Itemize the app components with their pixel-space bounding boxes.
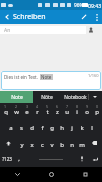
staticText: Notebook <box>64 94 87 101</box>
button[interactable]: ?123 <box>0 151 14 167</box>
button[interactable]: Dies ist ein Text. <box>1 71 101 90</box>
button[interactable]: 8 <box>72 103 82 119</box>
button[interactable]: 9 <box>82 103 92 119</box>
staticText: w <box>14 108 19 116</box>
staticText: 09:43 <box>88 2 102 9</box>
staticText: 7 <box>66 104 69 109</box>
button[interactable]: c <box>37 135 47 151</box>
button[interactable]: More suggestions <box>88 91 102 103</box>
staticText: Note <box>11 94 23 101</box>
staticText: 6 <box>56 104 59 109</box>
button[interactable]: v <box>47 135 57 151</box>
button[interactable]: , <box>14 151 24 167</box>
button[interactable]: Backspace <box>87 135 102 151</box>
staticText: p <box>95 108 99 116</box>
button[interactable]: 7 <box>62 103 72 119</box>
staticText: t <box>46 108 49 116</box>
staticText: i <box>76 108 78 116</box>
staticText: 4 <box>36 104 39 109</box>
button[interactable]: Nöte <box>33 91 61 103</box>
staticText: Schreiben <box>13 12 46 22</box>
staticText: k <box>80 124 84 132</box>
button[interactable]: x <box>27 135 37 151</box>
staticText: ?123 <box>2 156 12 162</box>
staticText: 5 <box>46 104 49 109</box>
button[interactable]: Back <box>0 10 13 24</box>
staticText: Nöte <box>41 94 53 101</box>
button[interactable]: m <box>77 135 87 151</box>
button[interactable]: Note <box>0 91 33 103</box>
button[interactable]: 3 <box>22 103 32 119</box>
staticText: 3 <box>26 104 29 109</box>
staticText: g <box>50 124 54 132</box>
button[interactable]: 6 <box>52 103 62 119</box>
button[interactable]: Recents <box>68 167 102 182</box>
button[interactable]: n <box>67 135 77 151</box>
staticText: e <box>25 108 29 116</box>
button[interactable]: Voice input <box>77 151 87 167</box>
staticText: y <box>20 141 24 149</box>
button[interactable]: f <box>37 119 47 135</box>
button[interactable]: d <box>27 119 37 135</box>
staticText: c <box>41 141 44 149</box>
staticText: l <box>91 124 93 132</box>
staticText: f <box>41 124 44 132</box>
staticText: h <box>60 124 64 132</box>
button[interactable]: 4 <box>32 103 42 119</box>
button[interactable]: An <box>0 26 86 34</box>
button[interactable]: Edit <box>77 10 91 24</box>
button[interactable]: Enter <box>87 151 102 167</box>
staticText: j <box>71 124 73 132</box>
button[interactable]: Add contact <box>88 27 94 33</box>
button[interactable]: More options <box>91 10 102 24</box>
button[interactable]: y <box>16 135 27 151</box>
staticText: b <box>60 141 64 149</box>
button[interactable]: Home <box>34 167 68 182</box>
staticText: v <box>50 141 54 149</box>
button[interactable]: 5 <box>42 103 52 119</box>
staticText: a <box>9 124 13 132</box>
button[interactable]: j <box>67 119 77 135</box>
button[interactable]: 2 <box>11 103 22 119</box>
staticText: 1 <box>4 104 7 109</box>
button[interactable]: g <box>47 119 57 135</box>
staticText: 9 <box>86 104 89 109</box>
staticText: n <box>70 141 74 149</box>
staticText: z <box>56 108 59 116</box>
button[interactable]: Shift <box>0 135 16 151</box>
staticText: 1/160 <box>88 73 99 78</box>
button[interactable]: b <box>57 135 67 151</box>
button[interactable]: Back <box>0 167 34 182</box>
staticText: Dies ist ein Text. <box>4 74 40 80</box>
button[interactable]: k <box>77 119 87 135</box>
button[interactable]: h <box>57 119 67 135</box>
staticText: m <box>79 141 85 149</box>
button[interactable]: a <box>5 119 16 135</box>
staticText: s <box>20 124 23 132</box>
staticText: , <box>18 155 20 163</box>
button[interactable]: Space <box>24 151 77 167</box>
button[interactable]: l <box>87 119 97 135</box>
staticText: o <box>85 108 89 116</box>
staticText: d <box>30 124 34 132</box>
staticText: x <box>30 141 34 149</box>
staticText: q <box>4 108 8 116</box>
staticText: An <box>4 27 11 34</box>
staticText: u <box>65 108 69 116</box>
staticText: Note <box>41 74 52 80</box>
button[interactable]: 0 <box>92 103 102 119</box>
staticText: 96% <box>74 2 84 9</box>
button[interactable]: 1 <box>0 103 11 119</box>
staticText: r <box>36 108 39 116</box>
button[interactable]: s <box>16 119 27 135</box>
staticText: 0 <box>96 104 99 109</box>
staticText: 8 <box>76 104 79 109</box>
staticText: 2 <box>15 104 18 109</box>
button[interactable]: Notebook <box>61 91 89 103</box>
